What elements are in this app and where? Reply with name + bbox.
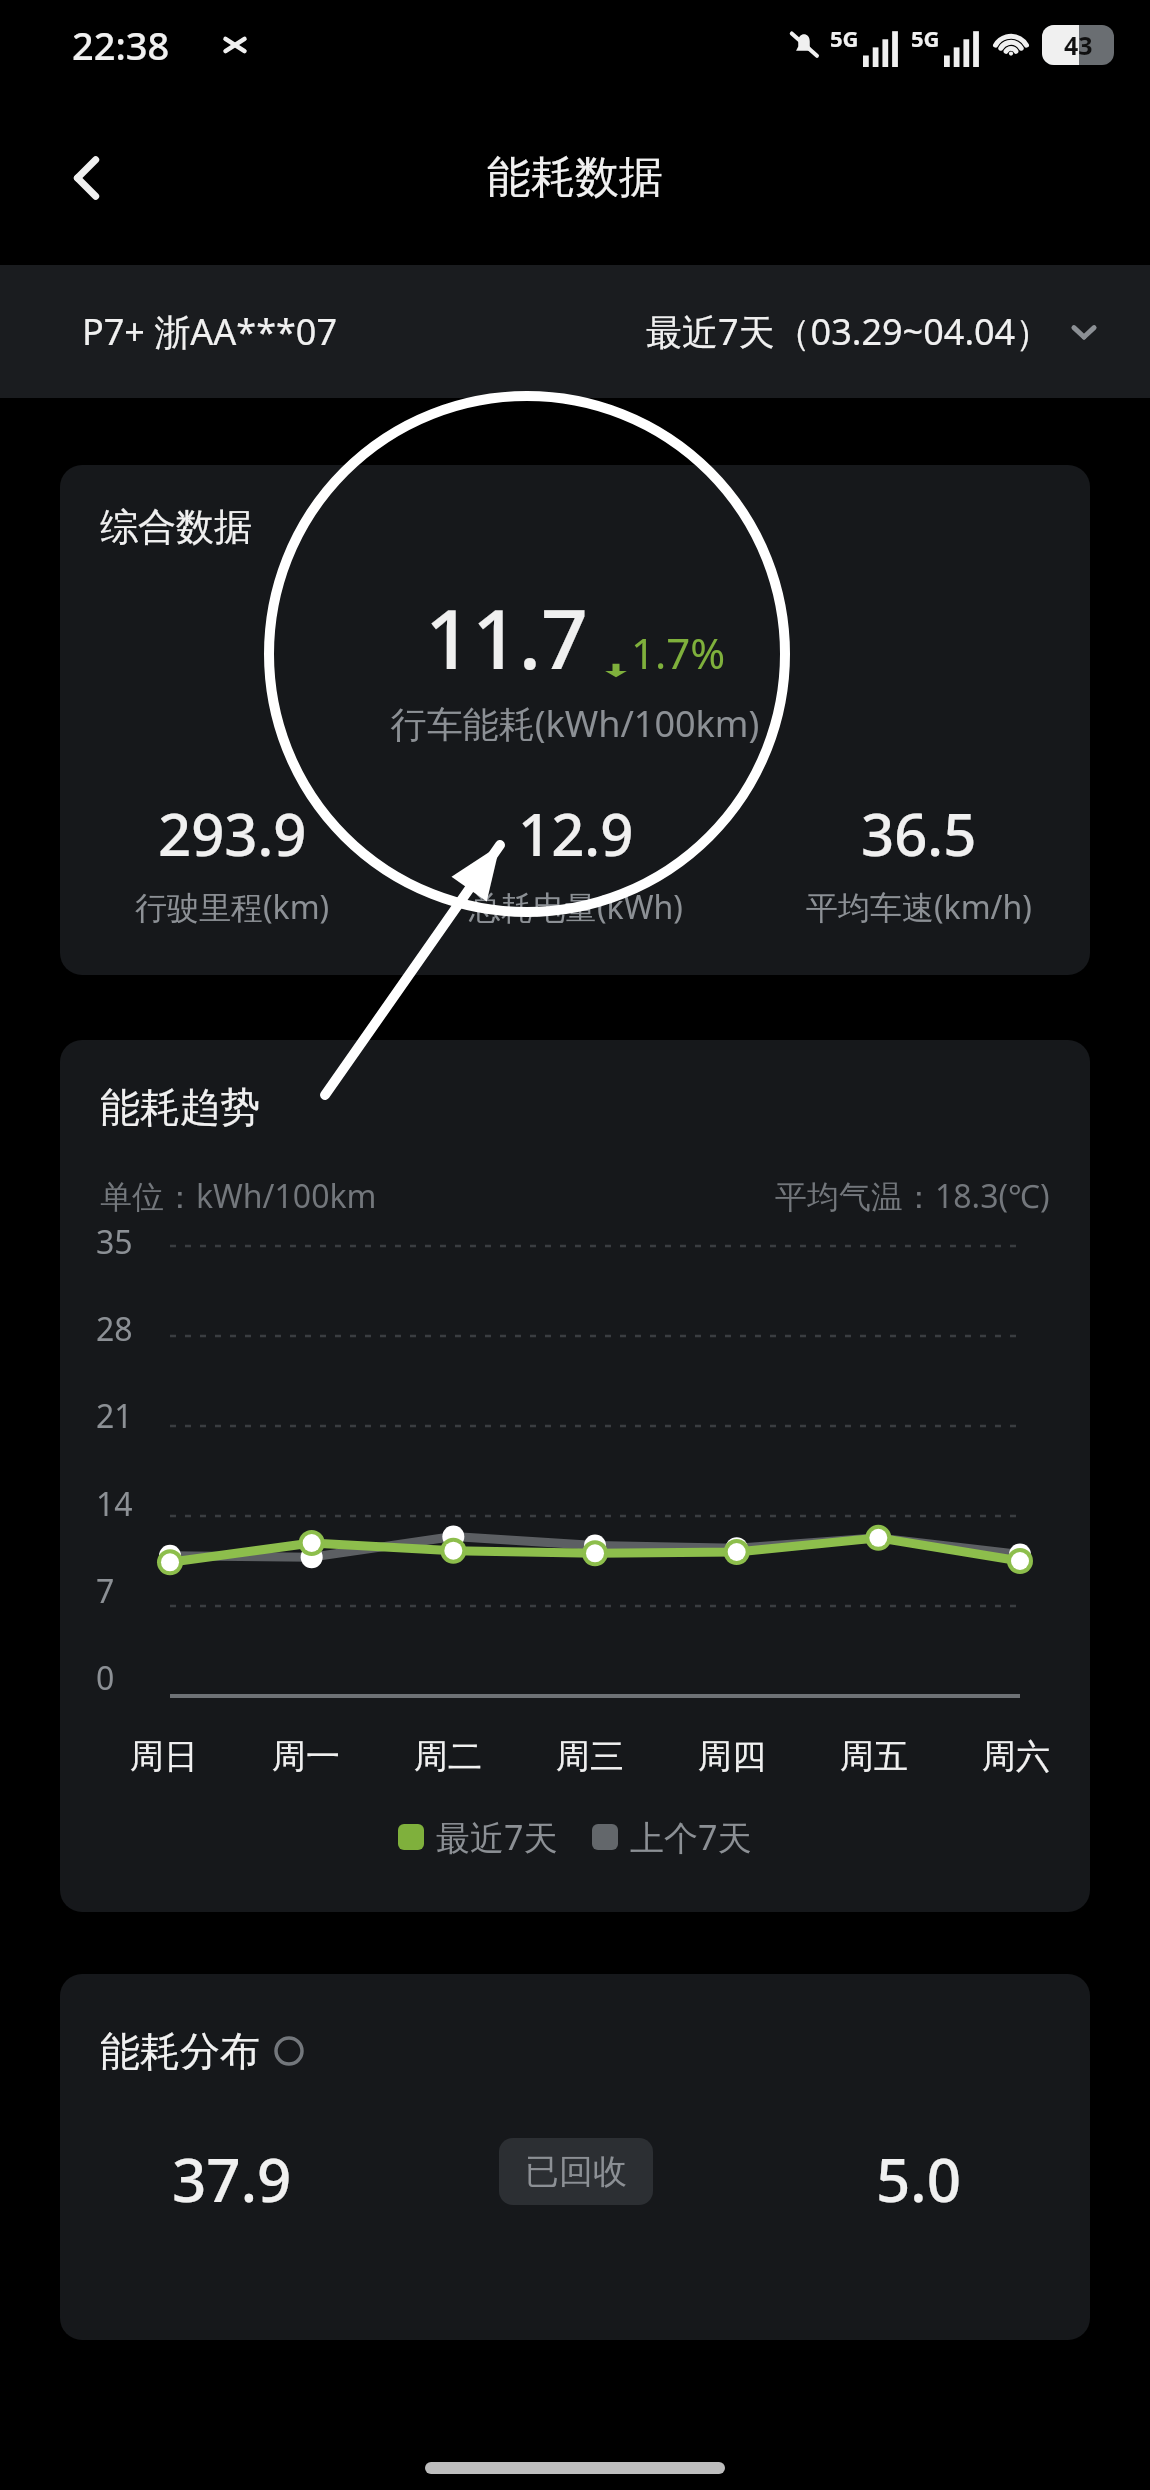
staticText: 28: [96, 1307, 133, 1351]
staticText: 5.0: [876, 2138, 961, 2220]
button[interactable]: 能耗趋势: [60, 1040, 1090, 1912]
staticText: 14: [96, 1482, 133, 1526]
staticText: 5G: [911, 23, 940, 53]
staticText: 11.7: [425, 581, 589, 693]
staticText: 21: [96, 1394, 133, 1438]
staticText: 平均气温：18.3(℃): [775, 1174, 1050, 1218]
staticText: 1.7%: [631, 624, 726, 681]
staticText: 能耗数据: [487, 150, 663, 205]
button[interactable]: Back: [42, 132, 134, 224]
staticText: 综合数据: [100, 503, 252, 551]
staticText: 22:38: [72, 19, 170, 71]
staticText: 0: [96, 1656, 115, 1700]
staticText: 最近7天: [436, 1814, 558, 1860]
staticText: 35: [96, 1220, 133, 1264]
staticText: 周六: [982, 1735, 1050, 1778]
staticText: 总耗电量(kWh): [469, 885, 683, 929]
staticText: 36.5: [861, 794, 977, 873]
staticText: 行车能耗(kWh/100km): [60, 699, 1090, 748]
staticText: 43: [1064, 28, 1093, 62]
button[interactable]: P7+ 浙AA***07: [0, 265, 1150, 398]
staticText: 能耗趋势: [100, 1082, 260, 1132]
staticText: 周日: [130, 1735, 198, 1778]
staticText: 周四: [698, 1735, 766, 1778]
staticText: 能耗分布: [100, 2026, 260, 2076]
button[interactable]: 能耗分布: [60, 1974, 1090, 2340]
staticText: 上个7天: [630, 1814, 752, 1860]
staticText: 平均车速(km/h): [806, 885, 1032, 929]
staticText: 293.9: [158, 794, 307, 873]
staticText: 周二: [414, 1735, 482, 1778]
staticText: P7+ 浙AA***07: [82, 307, 338, 356]
staticText: 7: [96, 1569, 115, 1613]
staticText: 周一: [272, 1735, 340, 1778]
staticText: 37.9: [172, 2138, 292, 2220]
staticText: 5G: [830, 23, 859, 53]
staticText: 行驶里程(km): [135, 885, 330, 929]
staticText: 12.9: [518, 794, 634, 873]
staticText: 周三: [556, 1735, 624, 1778]
staticText: 已回收: [525, 2150, 627, 2193]
staticText: 周五: [840, 1735, 908, 1778]
staticText: 最近7天（03.29~04.04）: [646, 307, 1052, 356]
button[interactable]: 综合数据: [60, 465, 1090, 975]
staticText: 单位：kWh/100km: [100, 1174, 377, 1218]
